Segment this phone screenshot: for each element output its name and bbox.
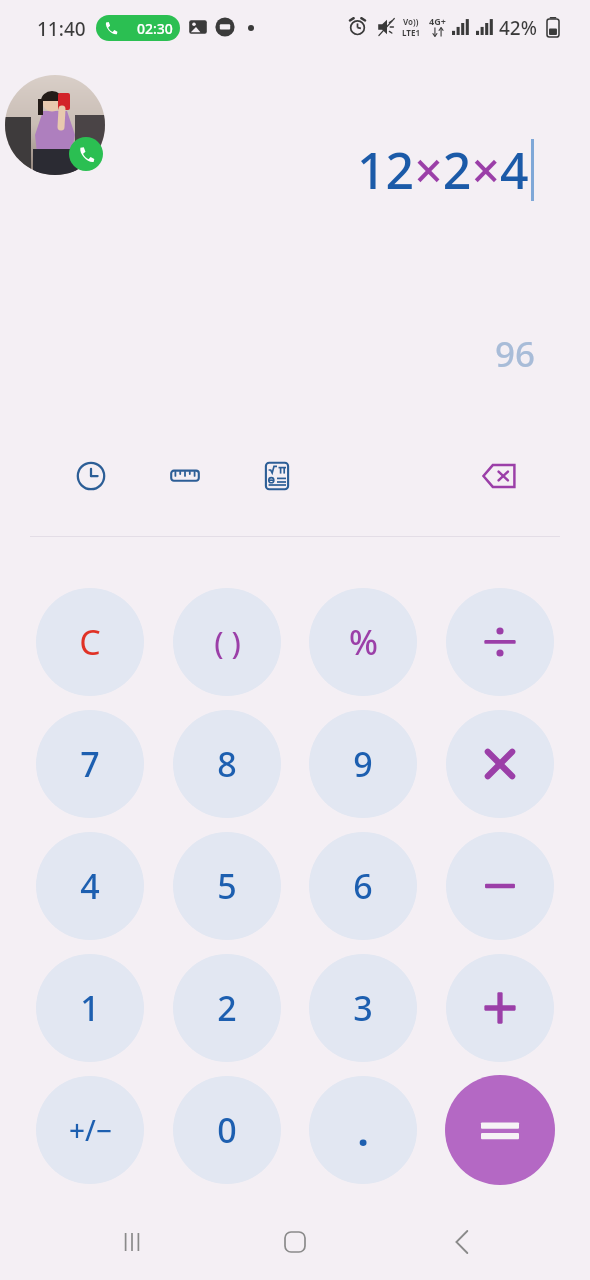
staticText: 4G+	[429, 15, 446, 27]
staticText: 1	[80, 985, 100, 1031]
button[interactable]: Divide	[446, 588, 554, 696]
button[interactable]: .	[309, 1076, 417, 1184]
staticText: 12×2×4	[357, 136, 529, 204]
staticText: 6	[353, 863, 373, 909]
button[interactable]: Ongoing call	[5, 75, 105, 175]
button[interactable]: Scientific calculator	[256, 455, 298, 497]
staticText: 2	[217, 985, 237, 1031]
staticText: Vo))	[403, 16, 419, 27]
staticText: 5	[217, 863, 237, 909]
button[interactable]: 6	[309, 832, 417, 940]
button[interactable]: 8	[173, 710, 281, 818]
button[interactable]: 0	[173, 1076, 281, 1184]
button[interactable]: C	[36, 588, 144, 696]
staticText: 0	[217, 1107, 237, 1153]
button[interactable]: 5	[173, 832, 281, 940]
staticText: 11:40	[37, 16, 86, 42]
staticText: 96	[495, 330, 536, 378]
button[interactable]: Multiply	[446, 710, 554, 818]
button[interactable]: 4	[36, 832, 144, 940]
button[interactable]: Minus	[446, 832, 554, 940]
staticText: 7	[80, 741, 100, 787]
button[interactable]: 7	[36, 710, 144, 818]
staticText: +/−	[69, 1111, 112, 1149]
staticText: .	[357, 1103, 369, 1157]
button[interactable]: Plus	[446, 954, 554, 1062]
button[interactable]: Backspace	[479, 455, 521, 497]
staticText: 8	[217, 741, 237, 787]
staticText: 42%	[499, 15, 537, 41]
button[interactable]: %	[309, 588, 417, 696]
button[interactable]: 9	[309, 710, 417, 818]
button[interactable]: +/−	[36, 1076, 144, 1184]
staticText: 02:30	[137, 19, 173, 38]
staticText: C	[79, 619, 101, 665]
button[interactable]: 1	[36, 954, 144, 1062]
button[interactable]: Home	[270, 1217, 320, 1267]
button[interactable]: History	[70, 455, 112, 497]
staticText: ( )	[214, 622, 241, 663]
button[interactable]: Equals	[445, 1075, 555, 1185]
button[interactable]: Recents	[107, 1217, 157, 1267]
staticText: 4	[80, 863, 100, 909]
staticText: %	[349, 619, 378, 665]
button[interactable]: Back	[437, 1217, 487, 1267]
staticText: 3	[353, 985, 373, 1031]
staticText: 9	[353, 741, 373, 787]
button[interactable]: 2	[173, 954, 281, 1062]
button[interactable]: Unit converter	[164, 455, 206, 497]
button[interactable]: 3	[309, 954, 417, 1062]
button[interactable]: ( )	[173, 588, 281, 696]
staticText: LTE1	[402, 27, 420, 38]
